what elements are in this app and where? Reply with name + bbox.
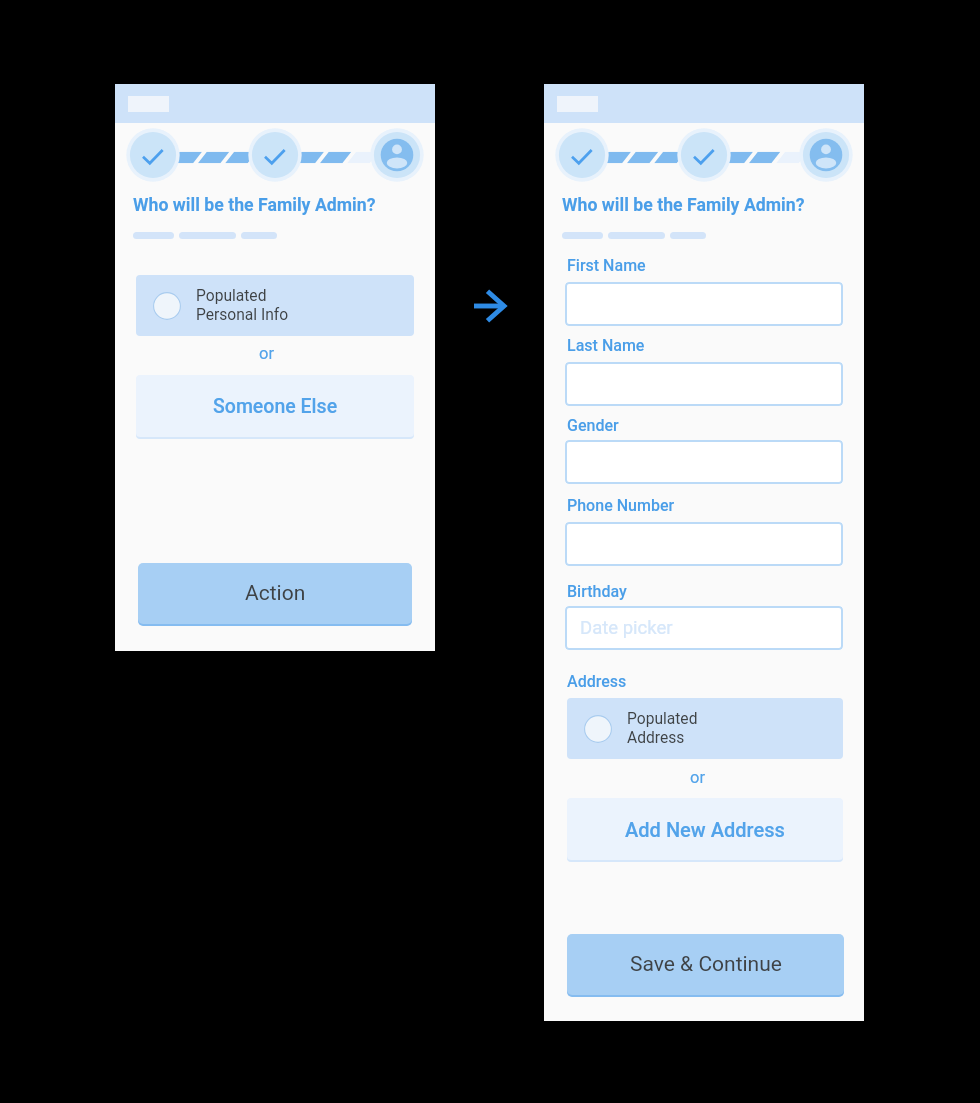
staticText: Add New Address bbox=[625, 818, 785, 841]
button[interactable]: Action bbox=[138, 563, 412, 624]
button[interactable]: Save & Continue bbox=[567, 934, 844, 995]
staticText: Birthday bbox=[567, 582, 627, 601]
staticText: Action bbox=[245, 581, 306, 606]
button[interactable]: Next step bbox=[470, 286, 510, 326]
staticText: Save & Continue bbox=[630, 952, 782, 977]
button[interactable]: Add New Address bbox=[567, 798, 843, 860]
button[interactable]: Someone Else bbox=[136, 375, 414, 437]
staticText: Who will be the Family Admin? bbox=[562, 195, 805, 216]
staticText: Last Name bbox=[567, 336, 645, 355]
staticText: Date picker bbox=[580, 617, 673, 639]
staticText: First Name bbox=[567, 256, 646, 275]
button[interactable]: Text field bbox=[565, 362, 843, 406]
staticText: or bbox=[690, 768, 706, 787]
other: App bar bbox=[115, 84, 435, 123]
staticText: Populated Personal Info bbox=[196, 287, 289, 324]
staticText: Gender bbox=[567, 416, 619, 435]
other: App bar bbox=[544, 84, 864, 123]
button[interactable]: Populated Personal Info bbox=[136, 275, 414, 336]
staticText: Address bbox=[567, 672, 627, 691]
button[interactable]: Text field bbox=[565, 606, 843, 650]
button[interactable]: Populated Address bbox=[567, 698, 843, 759]
staticText: or bbox=[259, 344, 275, 363]
button[interactable]: Text field bbox=[565, 282, 843, 326]
button[interactable]: Text field bbox=[565, 522, 843, 566]
button[interactable]: Text field bbox=[565, 440, 843, 484]
staticText: Phone Number bbox=[567, 496, 675, 515]
staticText: Populated Address bbox=[627, 710, 698, 747]
staticText: Someone Else bbox=[213, 395, 338, 418]
staticText: Who will be the Family Admin? bbox=[133, 195, 376, 216]
